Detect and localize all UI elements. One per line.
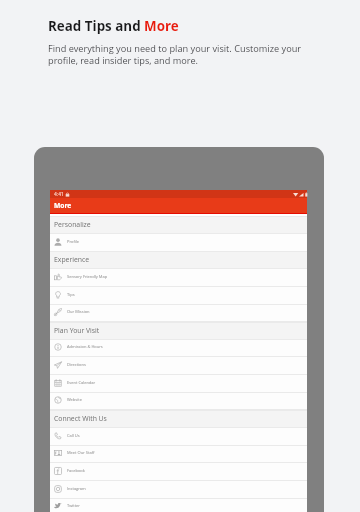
staticText: 4:41: [54, 191, 64, 197]
staticText: Event Calendar: [67, 380, 96, 385]
staticText: Tips: [67, 292, 75, 297]
staticText: Instagram: [67, 486, 86, 491]
staticText: Find everything you need to plan your vi…: [48, 42, 304, 66]
button[interactable]: Sensory Friendly Map: [50, 269, 307, 287]
staticText: Profile: [67, 239, 79, 244]
button[interactable]: Instagram: [50, 481, 307, 499]
staticText: Twitter: [67, 503, 80, 508]
button[interactable]: Twitter: [50, 498, 307, 512]
staticText: Our Mission: [67, 309, 90, 314]
button[interactable]: Facebook: [50, 463, 307, 481]
staticText: Experience: [54, 255, 90, 264]
button[interactable]: Meet Our Staff: [50, 445, 307, 463]
button[interactable]: Admission & Hours: [50, 339, 307, 357]
staticText: Website: [67, 397, 82, 402]
staticText: Admission & Hours: [67, 344, 103, 349]
staticText: Meet Our Staff: [67, 450, 95, 455]
staticText: Call Us: [67, 433, 80, 438]
button[interactable]: Directions: [50, 357, 307, 375]
staticText: Sensory Friendly Map: [67, 274, 108, 279]
staticText: Plan Your Visit: [54, 326, 100, 335]
button[interactable]: Event Calendar: [50, 375, 307, 393]
staticText: Personalize: [54, 220, 91, 229]
staticText: Facebook: [67, 468, 85, 473]
staticText: Read Tips and More: [48, 17, 179, 35]
button[interactable]: Our Mission: [50, 304, 307, 322]
staticText: Connect With Us: [54, 414, 107, 423]
button[interactable]: Website: [50, 392, 307, 410]
button[interactable]: Call Us: [50, 428, 307, 446]
button[interactable]: Tips: [50, 287, 307, 305]
button[interactable]: Profile: [50, 234, 307, 252]
staticText: More: [54, 201, 72, 210]
staticText: Directions: [67, 362, 86, 367]
